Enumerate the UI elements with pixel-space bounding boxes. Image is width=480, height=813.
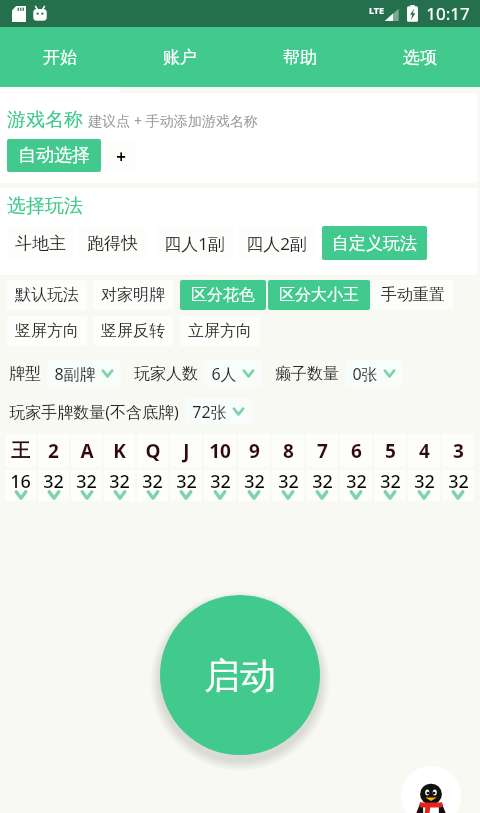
staticText: 区分花色 (191, 285, 255, 305)
staticText: 32 (176, 469, 197, 494)
staticText: 帮助 (283, 47, 317, 68)
button[interactable]: 5 (374, 434, 406, 467)
button[interactable]: 竖屏方向 (7, 316, 87, 346)
staticText: Q (145, 438, 161, 464)
staticText: 32 (278, 469, 299, 494)
button[interactable]: 32 (306, 470, 338, 501)
staticText: 手动重置 (381, 285, 445, 305)
button[interactable]: 8副牌 (47, 360, 121, 387)
button[interactable]: 6 (340, 434, 372, 467)
staticText: 32 (76, 469, 97, 494)
staticText: 6 (351, 438, 362, 464)
staticText: 启动 (204, 653, 276, 698)
staticText: 王 (11, 439, 30, 463)
staticText: 账户 (163, 47, 197, 68)
button[interactable]: 自动选择 (7, 139, 101, 172)
button[interactable]: 0张 (345, 360, 403, 387)
staticText: 32 (312, 469, 333, 494)
button[interactable]: 对家明牌 (93, 280, 173, 310)
staticText: 32 (43, 469, 64, 494)
staticText: 16 (10, 469, 31, 494)
staticText: A (80, 438, 94, 464)
staticText: 选项 (403, 47, 437, 68)
button[interactable]: 32 (408, 470, 440, 501)
staticText: 跑得快 (87, 233, 138, 254)
button[interactable]: K (104, 434, 135, 467)
button[interactable]: 竖屏反转 (93, 316, 173, 346)
staticText: 9 (249, 438, 260, 464)
staticText: 32 (210, 469, 231, 494)
button[interactable]: 手动重置 (373, 280, 453, 310)
button[interactable]: 默认玩法 (7, 280, 87, 310)
button[interactable]: 选项 (360, 27, 480, 87)
button[interactable]: 自定义玩法 (322, 226, 427, 260)
button[interactable]: 跑得快 (79, 226, 146, 260)
staticText: 4 (419, 438, 430, 464)
staticText: 3 (453, 438, 464, 464)
button[interactable]: 四人2副 (238, 226, 315, 260)
staticText: + (116, 145, 126, 168)
staticText: 癞子数量 (275, 364, 339, 384)
staticText: 72张 (192, 401, 227, 423)
button[interactable]: 16 (5, 470, 36, 501)
staticText: 竖屏反转 (101, 321, 165, 341)
button[interactable]: 8 (272, 434, 304, 467)
staticText: 牌型 (9, 364, 41, 384)
staticText: 默认玩法 (15, 285, 79, 305)
button[interactable]: 斗地主 (7, 226, 74, 260)
staticText: 斗地主 (15, 233, 66, 254)
staticText: 32 (380, 469, 401, 494)
button[interactable]: 启动 (160, 595, 320, 755)
button[interactable]: 9 (238, 434, 270, 467)
staticText: 32 (109, 469, 130, 494)
button[interactable]: 6人 (204, 360, 262, 387)
button[interactable]: 账户 (120, 27, 240, 87)
staticText: LTE (369, 4, 385, 16)
staticText: 四人1副 (164, 232, 225, 255)
button[interactable]: 32 (204, 470, 236, 501)
button[interactable]: 3 (442, 434, 474, 467)
staticText: 32 (142, 469, 163, 494)
staticText: 自动选择 (18, 144, 90, 167)
button[interactable]: 区分大小王 (268, 280, 370, 310)
staticText: 2 (48, 438, 59, 464)
button[interactable]: 32 (104, 470, 135, 501)
staticText: 建议点 + 手动添加游戏名称 (88, 111, 258, 130)
button[interactable]: 7 (306, 434, 338, 467)
button[interactable]: 帮助 (240, 27, 360, 87)
button[interactable]: 10 (204, 434, 236, 467)
staticText: 自定义玩法 (332, 233, 417, 254)
button[interactable]: 四人1副 (156, 226, 233, 260)
staticText: 6人 (211, 363, 237, 385)
staticText: 开始 (43, 47, 77, 68)
staticText: 10 (209, 438, 231, 464)
staticText: 四人2副 (246, 232, 307, 255)
button[interactable]: 添加游戏名称 (106, 140, 135, 172)
button[interactable]: 立屏方向 (180, 316, 260, 346)
button[interactable]: J (170, 434, 202, 467)
staticText: J (183, 438, 190, 464)
button[interactable]: A (71, 434, 102, 467)
button[interactable]: 32 (340, 470, 372, 501)
button[interactable]: 32 (374, 470, 406, 501)
button[interactable]: QQ (401, 766, 461, 813)
button[interactable]: Q (137, 434, 168, 467)
button[interactable]: 4 (408, 434, 440, 467)
button[interactable]: 32 (238, 470, 270, 501)
button[interactable]: 区分花色 (180, 280, 266, 310)
staticText: K (113, 438, 126, 464)
staticText: 立屏方向 (188, 321, 252, 341)
button[interactable]: 2 (38, 434, 69, 467)
staticText: 竖屏方向 (15, 321, 79, 341)
button[interactable]: 72张 (185, 398, 252, 425)
button[interactable]: 32 (170, 470, 202, 501)
staticText: 7 (317, 438, 328, 464)
button[interactable]: 32 (38, 470, 69, 501)
button[interactable]: 32 (137, 470, 168, 501)
button[interactable]: 开始 (0, 27, 120, 87)
staticText: 8 (283, 438, 294, 464)
button[interactable]: 32 (442, 470, 474, 501)
button[interactable]: 32 (272, 470, 304, 501)
button[interactable]: 32 (71, 470, 102, 501)
button[interactable]: 王 (5, 434, 36, 467)
